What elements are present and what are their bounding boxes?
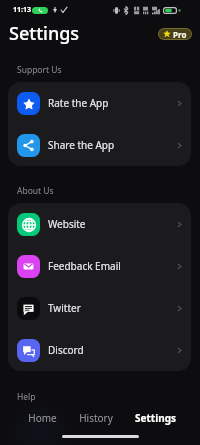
staticText: Settings	[135, 411, 176, 425]
staticText: Settings	[9, 21, 80, 46]
button[interactable]: Feedback Email	[8, 245, 191, 287]
staticText: 11:13	[13, 5, 31, 15]
staticText: Twitter	[48, 301, 81, 315]
staticText: Rate the App	[48, 96, 109, 110]
staticText: Share the App	[48, 138, 115, 152]
staticText: Support Us	[17, 64, 62, 76]
button[interactable]: Website	[8, 203, 191, 245]
button[interactable]: Share the App	[8, 124, 191, 166]
button[interactable]: Rate the App	[8, 82, 191, 124]
button[interactable]: Pro	[158, 28, 192, 40]
staticText: Help	[17, 391, 36, 403]
staticText: Feedback Email	[48, 259, 121, 273]
staticText: Website	[48, 217, 86, 231]
staticText: Discord	[48, 343, 84, 357]
button[interactable]: Settings	[131, 408, 180, 428]
staticText: About Us	[17, 185, 54, 197]
button[interactable]: Home	[24, 408, 61, 428]
staticText: History	[79, 411, 113, 425]
button[interactable]: History	[75, 408, 117, 428]
staticText: Home	[28, 411, 57, 425]
staticText: Pro	[173, 29, 187, 40]
button[interactable]: Twitter	[8, 287, 191, 329]
button[interactable]: Discord	[8, 329, 191, 371]
